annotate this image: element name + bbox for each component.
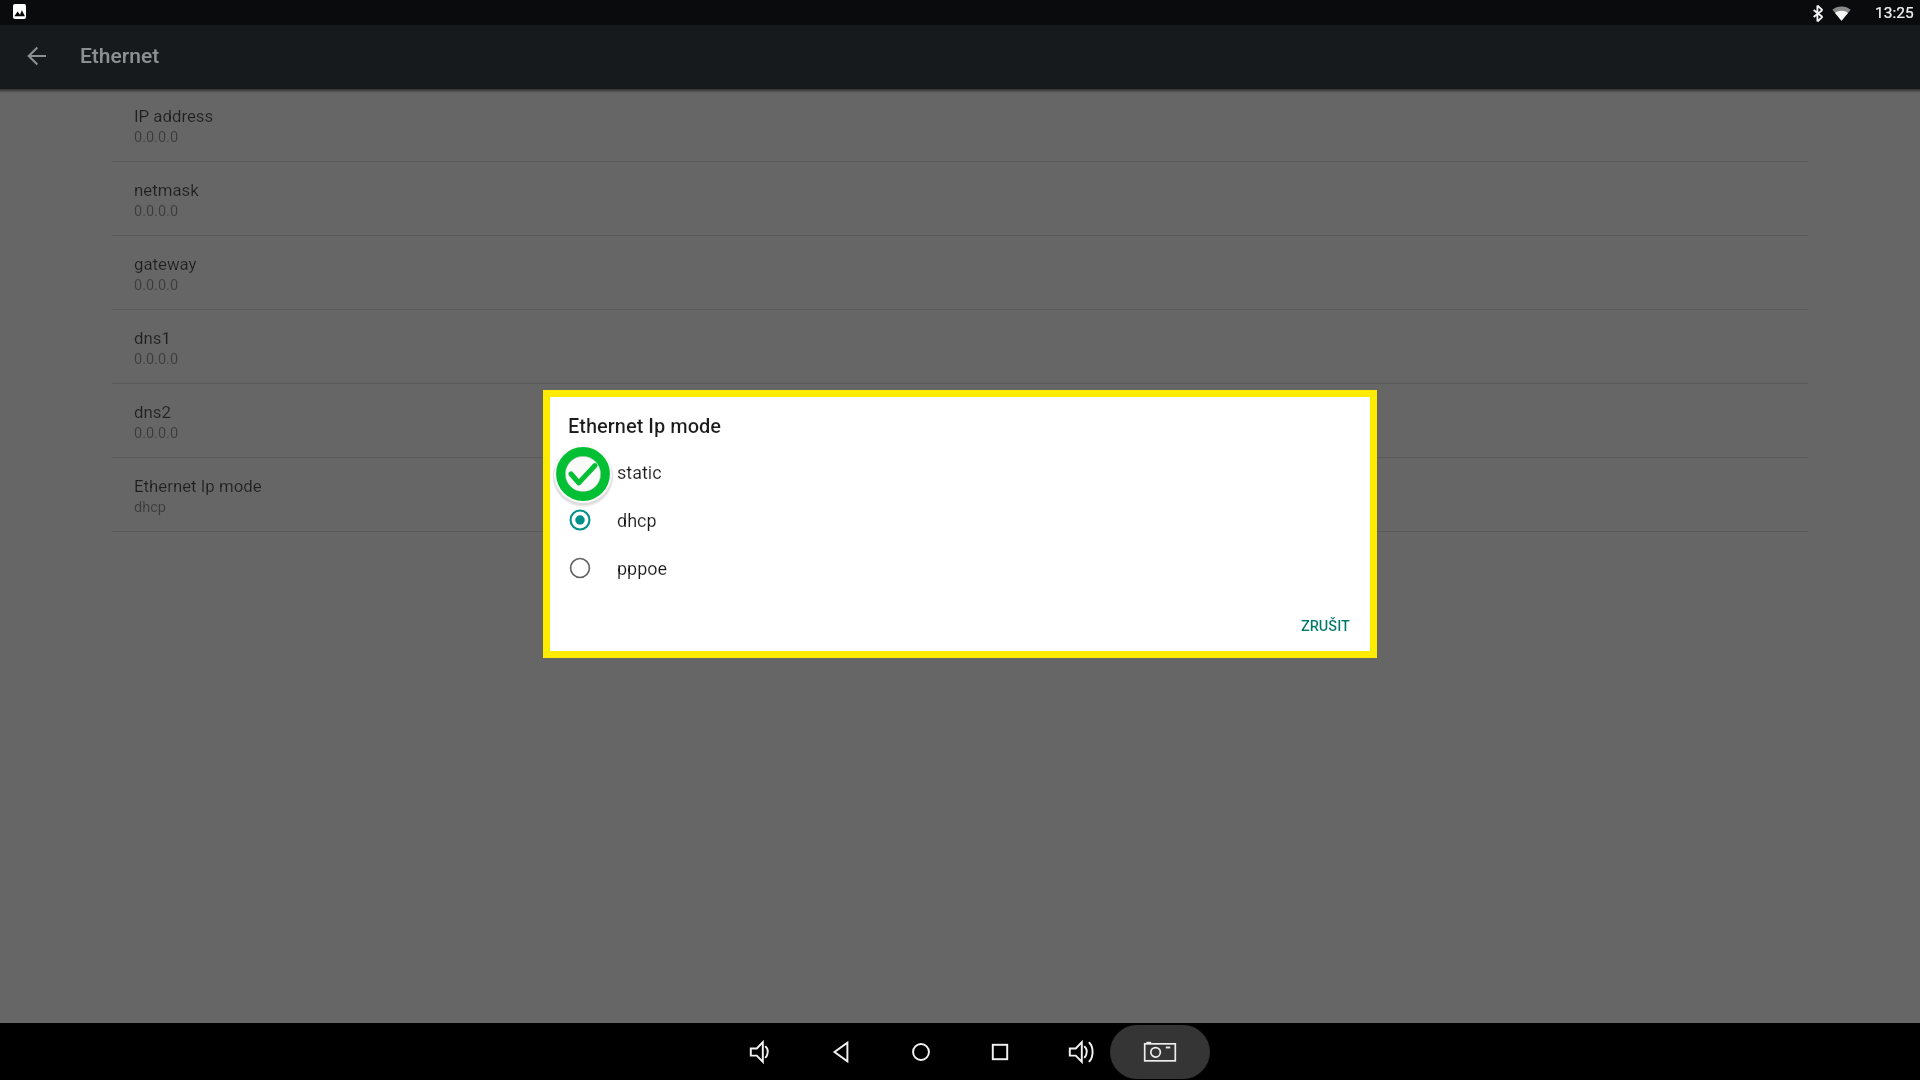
staticText: 13:25 [1875,4,1914,22]
staticText: static [617,462,662,483]
staticText: Ethernet Ip mode [568,414,721,437]
button[interactable]: static [550,448,1370,496]
staticText: dhcp [617,510,657,531]
button[interactable]: Back [822,1023,862,1080]
staticText: ZRUŠIT [1301,618,1350,635]
button[interactable]: Recents [980,1023,1020,1080]
button[interactable]: Volume down [741,1023,781,1080]
staticText: Ethernet Ip mode [134,476,262,496]
button[interactable]: ZRUŠIT [1293,610,1358,643]
staticText: 0.0.0.0 [134,129,179,146]
staticText: dhcp [134,499,166,516]
staticText: pppoe [617,558,668,579]
staticText: 0.0.0.0 [134,425,179,442]
staticText: Ethernet [80,44,160,69]
button[interactable]: dns2 [0,384,1920,458]
staticText: 0.0.0.0 [134,203,179,220]
staticText: gateway [134,254,197,274]
staticText: 0.0.0.0 [134,351,179,368]
button[interactable]: Screenshot [1110,1025,1210,1079]
button[interactable]: IP address [0,88,1920,162]
staticText: dns2 [134,402,171,422]
staticText: netmask [134,180,199,200]
button[interactable]: dhcp [550,496,1370,544]
button[interactable]: Back [19,38,55,74]
button[interactable]: Home [901,1023,941,1080]
staticText: IP address [134,106,214,126]
button[interactable]: Volume up [1060,1023,1100,1080]
staticText: 0.0.0.0 [134,277,179,294]
button[interactable]: pppoe [550,544,1370,592]
staticText: dns1 [134,328,171,348]
button[interactable]: Ethernet Ip mode [0,458,1920,532]
